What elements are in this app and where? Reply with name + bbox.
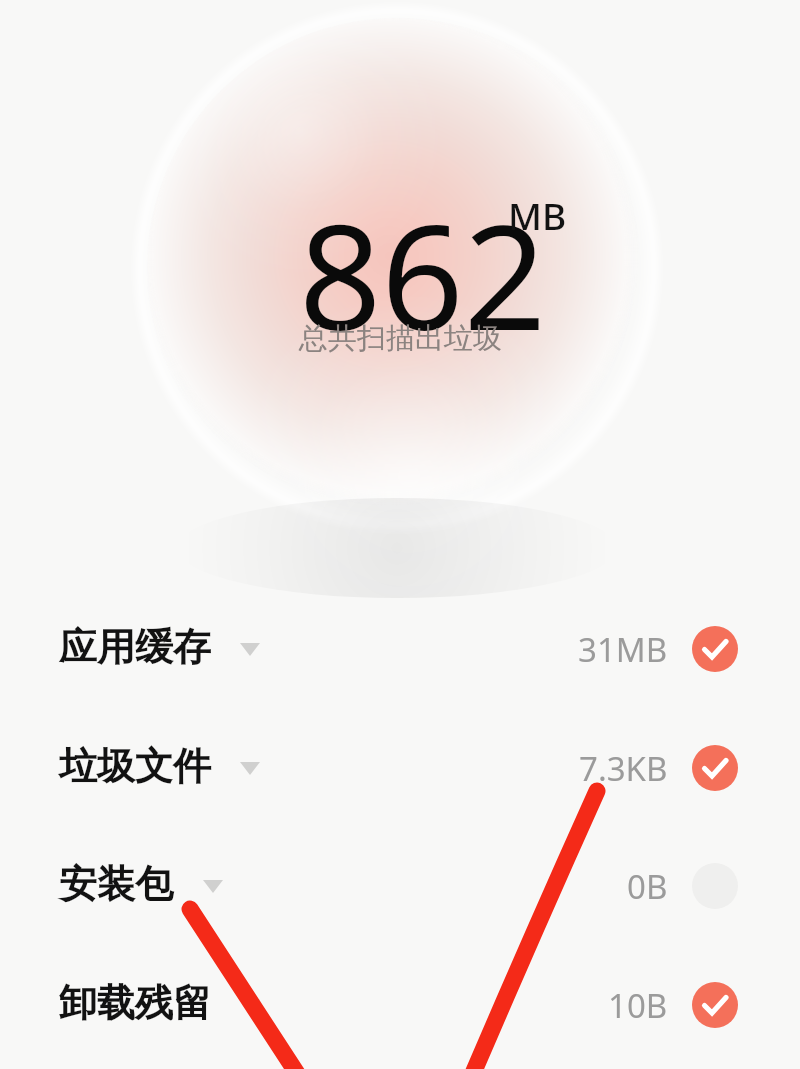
button[interactable]: 展开 应用缓存: [234, 631, 270, 667]
button[interactable]: 展开 安装包: [197, 868, 233, 904]
staticText: 应用缓存: [59, 623, 211, 671]
staticText: 10B: [608, 983, 668, 1027]
button[interactable]: 展开 垃圾文件: [234, 750, 270, 786]
button[interactable]: 取消选择 卸载残留: [692, 982, 738, 1028]
button[interactable]: 取消选择 应用缓存: [692, 626, 738, 672]
button[interactable]: 展开 卸载残留: [234, 987, 270, 1023]
staticText: 安装包: [59, 860, 173, 908]
staticText: 862: [299, 176, 547, 372]
button[interactable]: [0, 709, 800, 827]
staticText: 31MB: [578, 627, 668, 671]
staticText: 总共扫描出垃圾: [299, 320, 502, 357]
staticText: MB: [508, 190, 567, 240]
staticText: 7.3KB: [579, 746, 668, 790]
staticText: 垃圾文件: [59, 742, 211, 790]
button[interactable]: [0, 946, 800, 1064]
button[interactable]: [0, 590, 800, 708]
button[interactable]: 取消选择 垃圾文件: [692, 745, 738, 791]
staticText: 卸载残留: [59, 979, 211, 1027]
staticText: 0B: [627, 864, 668, 908]
button[interactable]: [0, 827, 800, 945]
button[interactable]: 选择 安装包: [692, 863, 738, 909]
